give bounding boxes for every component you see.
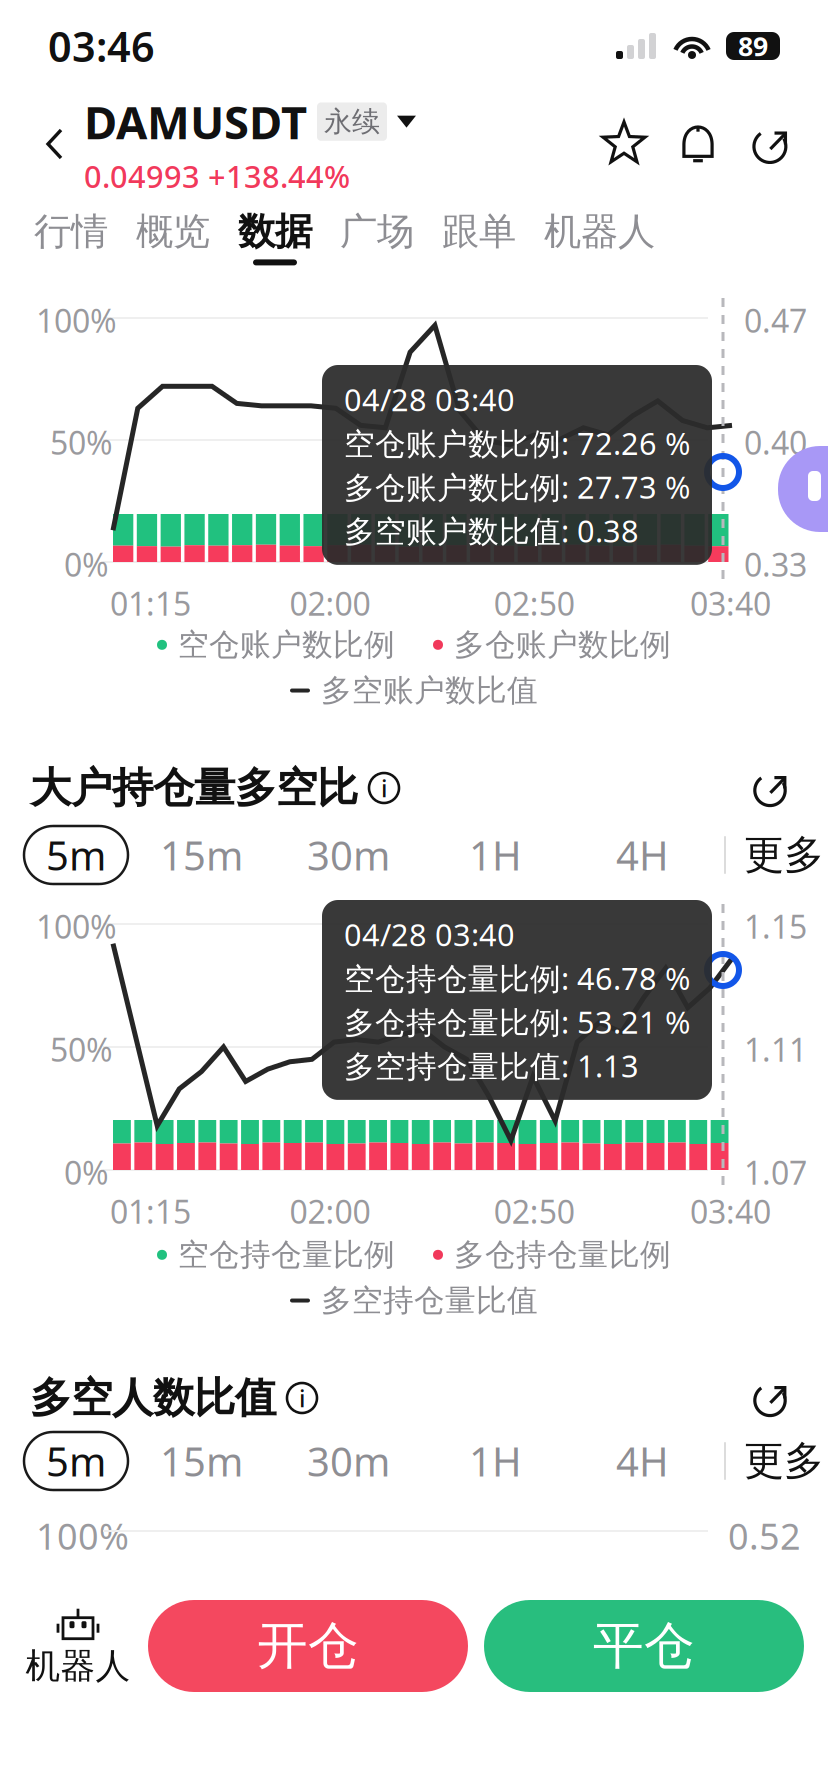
button[interactable]: 15m [128,826,275,884]
staticText: 永续 [324,104,380,139]
button[interactable]: 机器人 [24,1591,132,1701]
staticText: 4H [616,1434,669,1487]
staticText: 空仓持仓量比例 [178,1236,395,1274]
button[interactable]: 30m [275,1432,422,1490]
staticText: 0% [64,1151,109,1193]
button[interactable]: 1H [422,1432,569,1490]
staticText: 01:15 [110,582,191,624]
staticText: 02:50 [494,582,575,624]
staticText: 1.07 [744,1151,807,1193]
button[interactable]: 更多 [726,1432,828,1490]
button[interactable]: Favorite [594,112,654,176]
staticText: 空仓账户数比例: 72.26 % [344,423,690,463]
staticText: 03:40 [690,1190,771,1232]
staticText: 平仓 [593,1615,695,1677]
button[interactable]: 4H [569,826,716,884]
staticText: 03:46 [48,19,155,73]
staticText: 30m [307,828,390,881]
staticText: 多空账户数比值: 0.38 [344,510,639,551]
staticText: 1.11 [744,1028,807,1070]
button[interactable]: 1H [422,826,569,884]
staticText: 数据 [238,209,312,254]
staticText: 0.47 [744,299,807,341]
staticText: 01:15 [110,1190,191,1232]
button[interactable]: 概览 [122,198,224,276]
button[interactable]: 15m [128,1432,275,1490]
button[interactable]: 机器人 [530,198,669,276]
button[interactable]: 平仓 [484,1600,804,1692]
staticText: 02:00 [289,582,370,624]
staticText: 多仓账户数比例: 27.73 % [344,466,690,507]
button[interactable]: 5m [24,826,128,884]
button[interactable]: 广场 [326,198,428,276]
staticText: 50% [50,421,113,463]
staticText: 多空持仓量比值: 1.13 [344,1045,639,1086]
staticText: 多仓持仓量比例 [454,1236,671,1274]
button[interactable]: Open [746,762,798,814]
staticText: 多仓账户数比例 [454,626,671,664]
staticText: 30m [307,1434,390,1487]
staticText: 跟单 [442,209,516,254]
button[interactable]: Back [26,106,84,182]
staticText: i [381,772,387,804]
button[interactable]: 5m [24,1432,128,1490]
staticText: 50% [50,1028,113,1070]
staticText: 100% [36,1512,129,1560]
staticText: 多空账户数比值 [321,672,538,709]
staticText: 04/28 03:40 [344,914,515,955]
staticText: 更多 [744,830,824,879]
staticText: 5m [46,1434,106,1487]
staticText: 0.04993 +138.44% [84,156,350,196]
staticText: DAMUSDT [84,91,307,152]
button[interactable]: Assistant [778,446,828,532]
staticText: 100% [36,299,117,341]
staticText: 0.52 [728,1512,801,1560]
button[interactable]: 4H [569,1432,716,1490]
staticText: 更多 [744,1436,824,1485]
staticText: 1H [469,1434,522,1487]
staticText: 15m [160,828,243,881]
staticText: 0.33 [744,543,807,585]
staticText: 02:50 [494,1190,575,1232]
staticText: 多空持仓量比值 [321,1282,538,1319]
staticText: 机器人 [25,1645,130,1687]
staticText: 0.40 [744,421,807,463]
staticText: 多仓持仓量比例: 53.21 % [344,1001,690,1042]
staticText: 5m [46,828,106,881]
staticText: 1H [469,828,522,881]
staticText: 空仓账户数比例 [178,626,395,664]
button[interactable]: Share [742,112,802,176]
button[interactable]: 跟单 [428,198,530,276]
staticText: 多空人数比值 [30,1373,276,1423]
staticText: 机器人 [544,209,655,254]
staticText: 89 [738,28,768,64]
staticText: 03:40 [690,582,771,624]
staticText: 大户持仓量多空比 [30,763,358,813]
staticText: 开仓 [257,1615,359,1677]
button[interactable]: Alerts [668,112,728,176]
button[interactable]: 数据 [224,198,326,276]
staticText: 空仓持仓量比例: 46.78 % [344,958,690,998]
button[interactable]: 开仓 [148,1600,468,1692]
staticText: 02:00 [289,1190,370,1232]
staticText: 1.15 [744,905,807,947]
staticText: 广场 [340,209,414,254]
button[interactable]: 行情 [20,198,122,276]
button[interactable]: 更多 [726,826,828,884]
staticText: 4H [616,828,669,881]
staticText: 概览 [136,209,210,254]
button[interactable]: Open [746,1372,798,1424]
staticText: 15m [160,1434,243,1487]
staticText: 100% [36,905,117,947]
staticText: 行情 [34,209,108,254]
staticText: 0% [64,543,109,585]
staticText: i [299,1382,305,1414]
staticText: 04/28 03:40 [344,379,515,420]
button[interactable]: 30m [275,826,422,884]
